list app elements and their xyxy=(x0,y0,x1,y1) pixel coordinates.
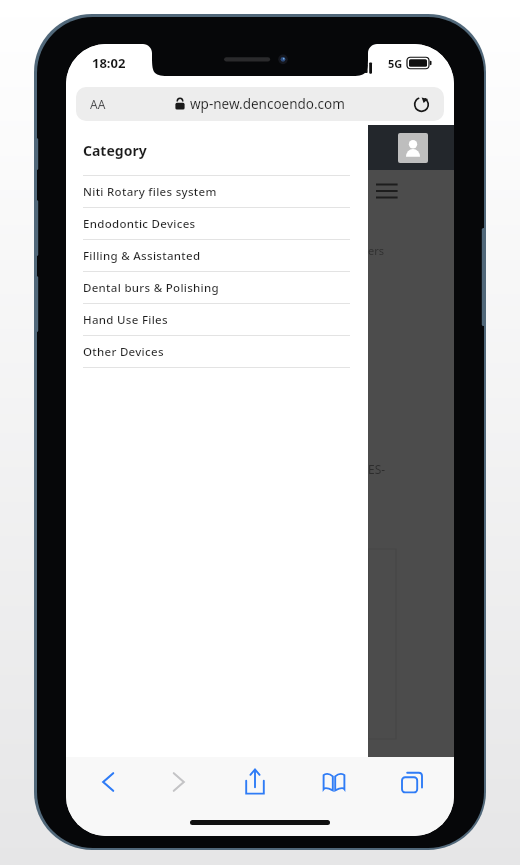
staticText: AA xyxy=(90,96,106,112)
button[interactable]: Niti Rotary files system xyxy=(66,176,368,207)
button[interactable]: Forward xyxy=(140,761,218,803)
button[interactable]: Filling & Assistanted xyxy=(66,240,368,271)
staticText: Endodontic Devices xyxy=(83,216,196,232)
staticText: ES- xyxy=(368,461,386,477)
staticText: Other Devices xyxy=(83,344,164,360)
staticText: Dental burs & Polishing xyxy=(83,280,219,296)
staticText: ers xyxy=(368,243,385,258)
button[interactable]: Bookmarks xyxy=(295,761,373,803)
button[interactable]: Account xyxy=(398,133,428,163)
button[interactable]: Back xyxy=(69,761,147,803)
button[interactable]: AA xyxy=(76,87,444,121)
button[interactable]: Dental burs & Polishing xyxy=(66,272,368,303)
button[interactable]: Reload xyxy=(413,96,430,113)
staticText: 18:02 xyxy=(92,54,126,72)
staticText: 5G xyxy=(388,56,403,71)
button[interactable]: Share xyxy=(216,761,294,803)
button[interactable]: Hand Use Files xyxy=(66,304,368,335)
staticText: Hand Use Files xyxy=(83,312,168,328)
button[interactable]: Other Devices xyxy=(66,336,368,367)
staticText: wp-new.dencoendo.com xyxy=(190,95,345,113)
button[interactable]: Menu xyxy=(376,181,400,201)
staticText: Niti Rotary files system xyxy=(83,184,217,200)
button[interactable]: Endodontic Devices xyxy=(66,208,368,239)
staticText: Filling & Assistanted xyxy=(83,248,201,264)
button[interactable]: Tabs xyxy=(373,761,451,803)
staticText: Category xyxy=(83,141,147,160)
